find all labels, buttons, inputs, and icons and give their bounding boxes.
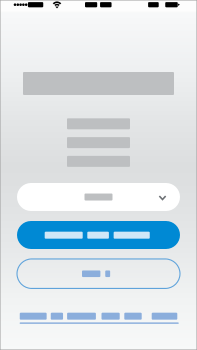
button[interactable]: Alternative action bbox=[17, 259, 180, 288]
button[interactable]: Submit bbox=[17, 221, 180, 249]
button[interactable]: Choose option bbox=[17, 183, 180, 211]
button[interactable]: More information bbox=[20, 306, 179, 324]
